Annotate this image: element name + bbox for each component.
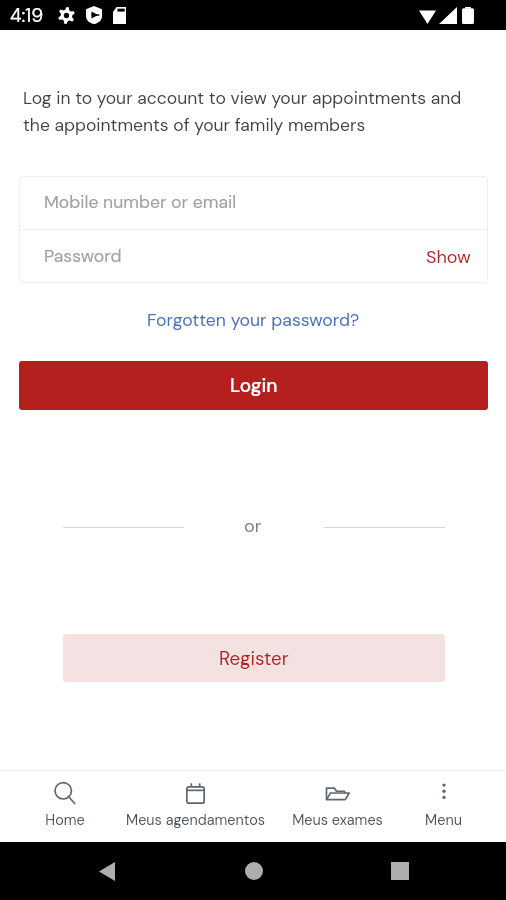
staticText: Meus exames: [292, 811, 383, 830]
button[interactable]: Home: [0, 771, 129, 842]
button[interactable]: Meus agendamentos: [129, 771, 261, 842]
staticText: Log in to your account to view your appo…: [23, 87, 480, 136]
staticText: Login: [230, 373, 278, 398]
button[interactable]: Register: [63, 634, 445, 682]
other: Meus agendamentos: [186, 782, 205, 804]
button[interactable]: Recent apps: [327, 842, 473, 900]
other: Menu: [434, 782, 454, 804]
staticText: Mobile number or email: [44, 191, 237, 214]
button[interactable]: Forgotten your password?: [139, 303, 368, 338]
staticText: Password: [44, 245, 122, 268]
staticText: Meus agendamentos: [126, 811, 265, 830]
button[interactable]: Meus exames: [261, 771, 414, 842]
button[interactable]: Home: [180, 842, 327, 900]
button[interactable]: Password: [19, 230, 488, 283]
button[interactable]: Menu: [414, 771, 473, 842]
staticText: Register: [219, 646, 289, 670]
staticText: or: [244, 514, 262, 537]
other: Home: [54, 782, 76, 804]
button[interactable]: Login: [19, 361, 488, 410]
staticText: Menu: [425, 811, 462, 830]
staticText: Forgotten your password?: [147, 309, 360, 332]
staticText: 4:19: [10, 3, 44, 28]
staticText: Show: [426, 245, 471, 268]
button[interactable]: Mobile number or email: [19, 176, 488, 229]
button[interactable]: Back: [34, 842, 180, 900]
other: Meus exames: [325, 782, 350, 804]
staticText: Home: [45, 811, 85, 830]
